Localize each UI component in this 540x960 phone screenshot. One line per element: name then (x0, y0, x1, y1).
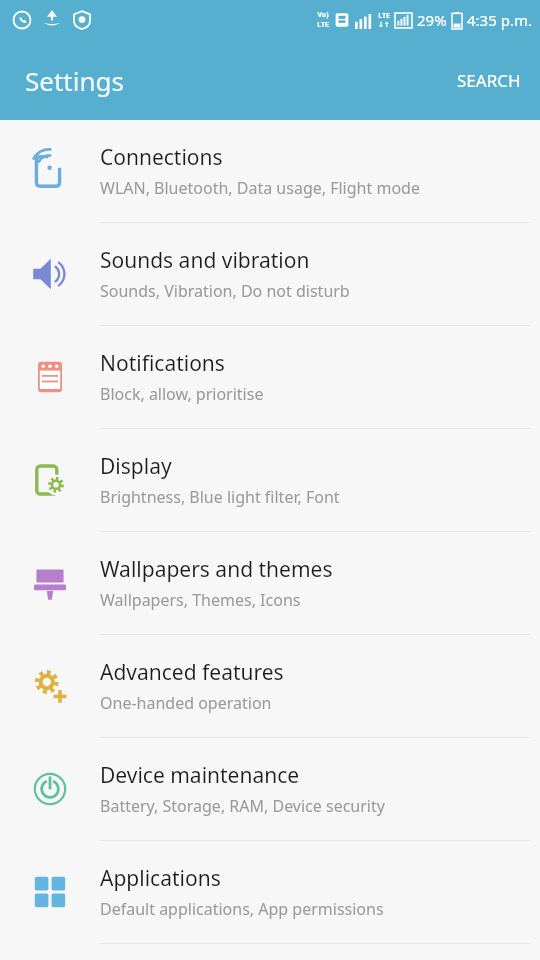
staticText: Connections (100, 143, 223, 172)
staticText: Device maintenance (100, 761, 300, 790)
button[interactable]: Wallpapers and themes (0, 532, 540, 635)
staticText: One-handed operation (100, 692, 272, 714)
staticText: Sounds, Vibration, Do not disturb (100, 280, 350, 302)
staticText: 4:35 p.m. (467, 10, 532, 30)
staticText: LTE (378, 11, 390, 21)
staticText: Battery, Storage, RAM, Device security (100, 795, 385, 817)
staticText: ↓↑ (378, 21, 390, 29)
staticText: WLAN, Bluetooth, Data usage, Flight mode (100, 177, 420, 199)
staticText: Notifications (100, 349, 225, 378)
button[interactable]: Sounds and vibration (0, 223, 540, 326)
staticText: LTE (317, 20, 329, 30)
staticText: Wallpapers, Themes, Icons (100, 589, 301, 611)
staticText: 29% (417, 10, 447, 30)
staticText: Default applications, App permissions (100, 898, 384, 920)
button[interactable]: Connections (0, 120, 540, 223)
staticText: Display (100, 452, 172, 481)
staticText: Vo) (317, 10, 329, 20)
button[interactable]: Applications (0, 841, 540, 944)
staticText: Block, allow, prioritise (100, 383, 264, 405)
staticText: SEARCH (457, 69, 521, 92)
button[interactable]: Notifications (0, 326, 540, 429)
button[interactable]: Device maintenance (0, 738, 540, 841)
staticText: Applications (100, 864, 221, 893)
staticText: Sounds and vibration (100, 246, 310, 275)
staticText: Advanced features (100, 658, 284, 687)
staticText: Settings (25, 63, 124, 98)
button[interactable]: Display (0, 429, 540, 532)
button[interactable]: SEARCH (438, 55, 540, 106)
staticText: Brightness, Blue light filter, Font (100, 486, 340, 508)
staticText: Wallpapers and themes (100, 555, 333, 584)
button[interactable]: Advanced features (0, 635, 540, 738)
